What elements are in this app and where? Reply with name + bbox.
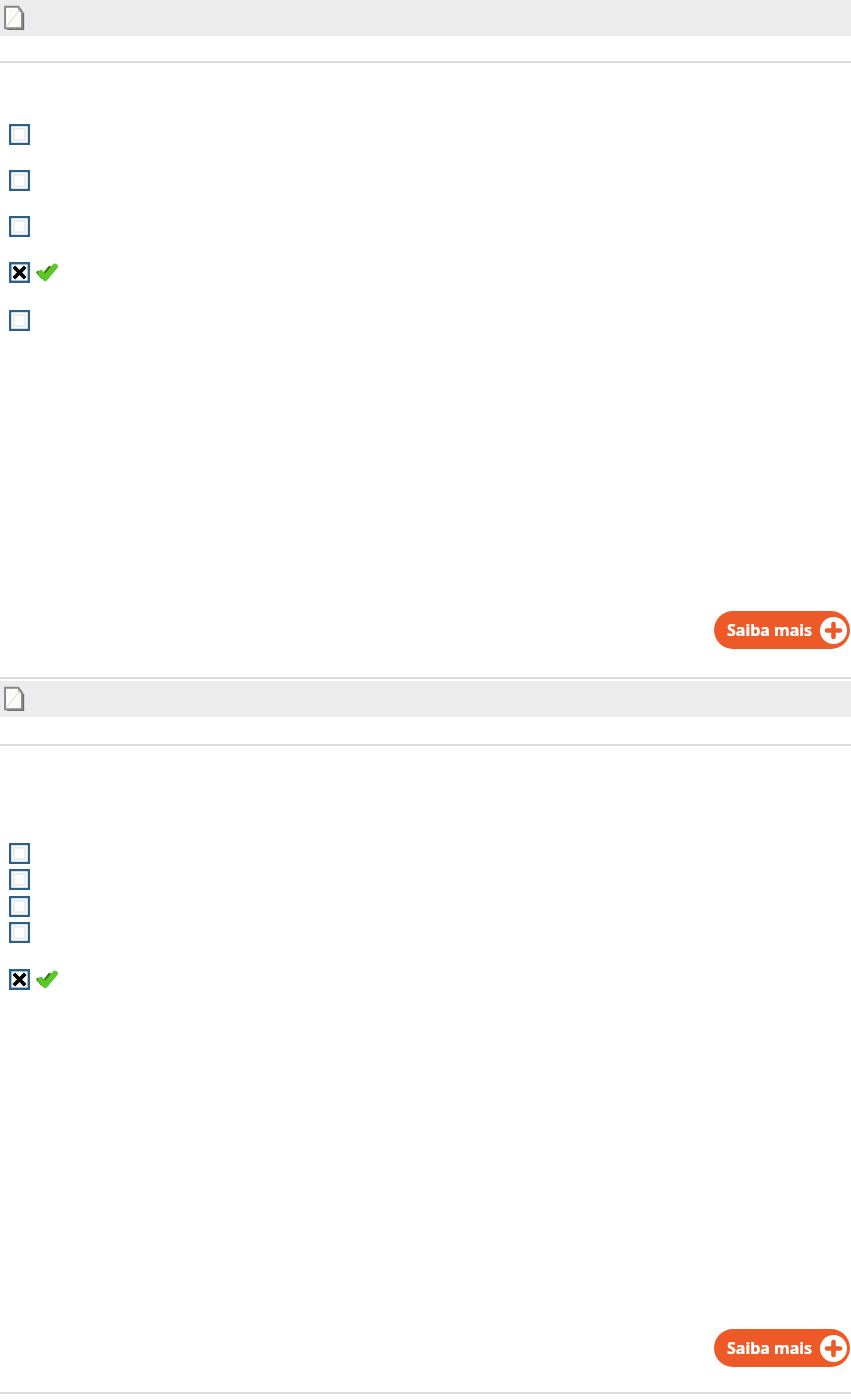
button[interactable]: Answer option xyxy=(9,922,30,943)
button[interactable]: Saiba mais xyxy=(714,1329,850,1367)
button[interactable]: Saiba mais xyxy=(714,611,850,649)
button[interactable]: Answer option xyxy=(9,170,30,191)
button[interactable]: Document xyxy=(4,687,25,712)
button[interactable]: Answer option xyxy=(9,869,30,890)
button[interactable]: Answer option xyxy=(9,843,30,864)
button[interactable]: Answer option xyxy=(9,216,30,237)
button[interactable]: Selected answer xyxy=(9,262,56,283)
button[interactable]: Document xyxy=(4,6,25,31)
button[interactable]: Answer option xyxy=(9,310,30,331)
button[interactable]: Answer option xyxy=(9,896,30,917)
staticText: Saiba mais xyxy=(727,1337,813,1359)
button[interactable]: Selected answer xyxy=(9,969,56,990)
staticText: Saiba mais xyxy=(727,619,813,641)
button[interactable]: Answer option xyxy=(9,124,30,145)
